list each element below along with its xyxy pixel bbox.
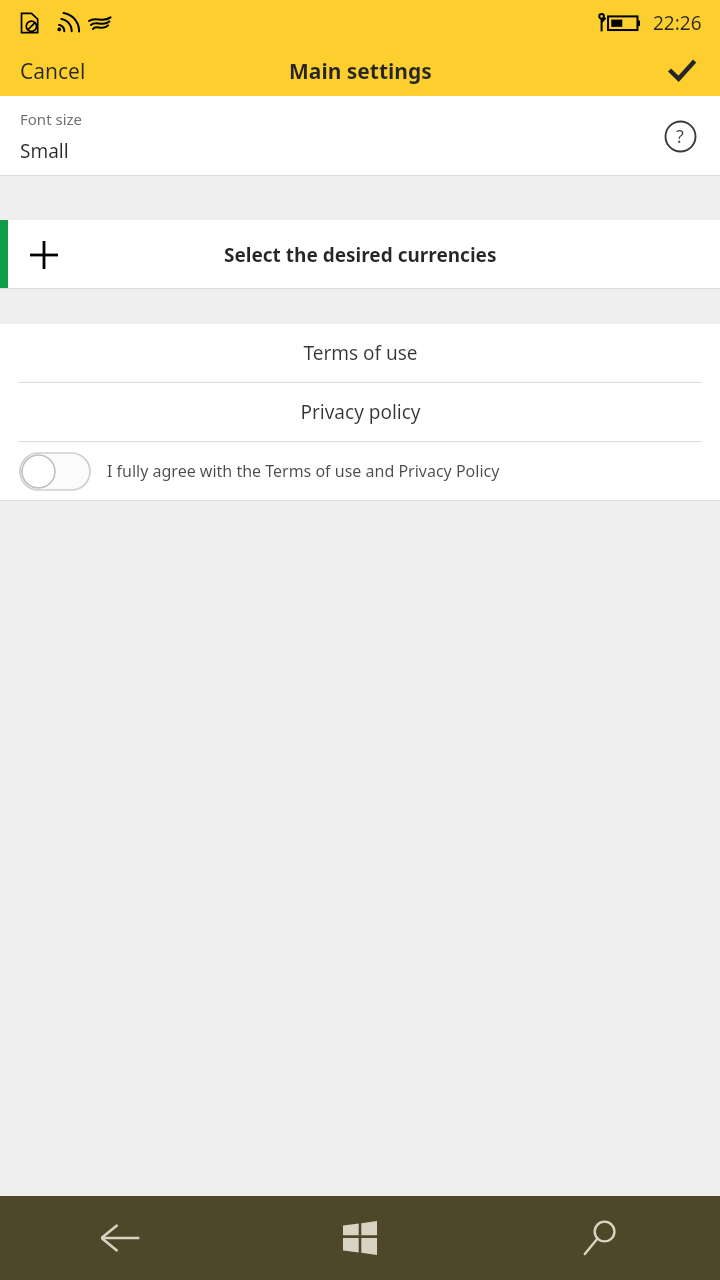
button[interactable]: Confirm (644, 46, 720, 96)
staticText: Privacy policy (300, 399, 421, 425)
staticText: I fully agree with the Terms of use and … (107, 460, 500, 482)
staticText: ? (676, 124, 684, 149)
staticText: 22:26 (653, 10, 702, 36)
button[interactable]: Cancel (0, 46, 170, 96)
button[interactable]: Back (0, 1196, 240, 1280)
staticText: Main settings (289, 57, 432, 86)
staticText: Cancel (20, 57, 86, 86)
button[interactable]: Help (654, 110, 706, 162)
staticText: Small (20, 138, 69, 164)
button[interactable]: Search (480, 1196, 720, 1280)
staticText: Font size (20, 109, 83, 129)
button[interactable]: Terms of use (0, 324, 720, 382)
button[interactable]: Select the desired currencies (0, 220, 720, 289)
staticText: Select the desired currencies (224, 242, 497, 268)
button[interactable]: I fully agree with the Terms of use and … (0, 442, 720, 500)
staticText: Terms of use (303, 340, 418, 366)
button[interactable]: Home (240, 1196, 480, 1280)
button[interactable]: Privacy policy (0, 383, 720, 441)
button[interactable]: Font size (0, 96, 720, 176)
